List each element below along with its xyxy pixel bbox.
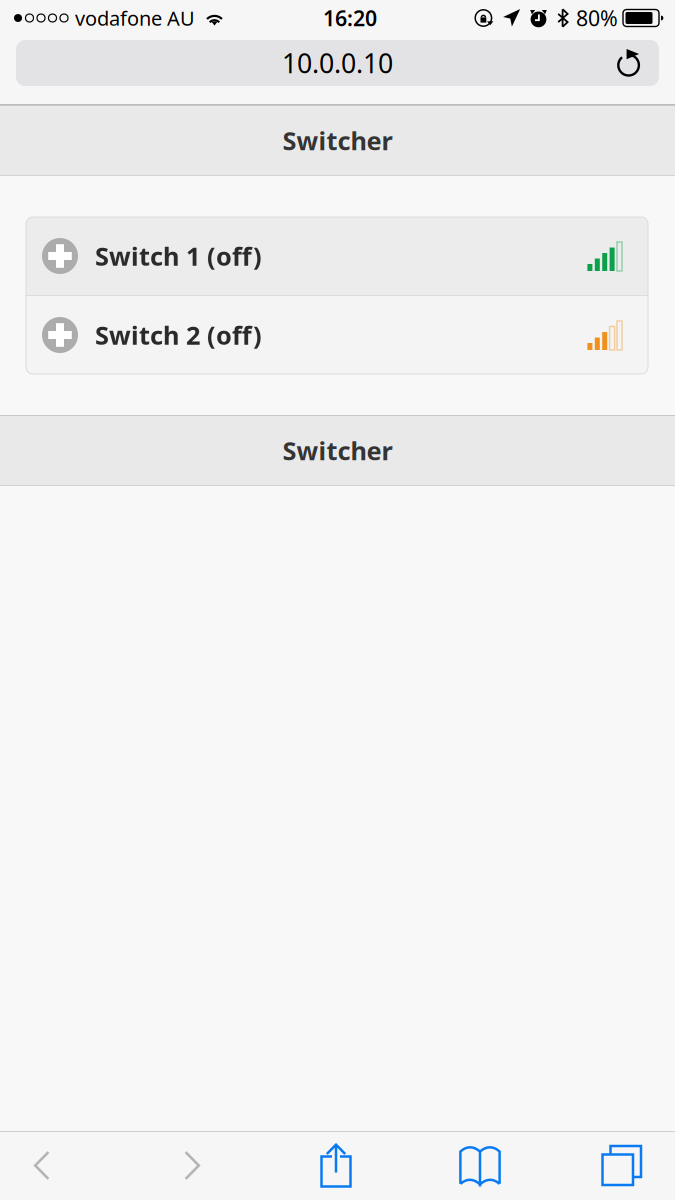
staticText: 16:20 xyxy=(323,4,377,32)
button[interactable]: Switch 1 (off) xyxy=(26,217,648,295)
staticText: vodafone AU xyxy=(75,5,195,31)
staticText: 80% xyxy=(576,4,618,32)
staticText: 10.0.0.10 xyxy=(282,45,393,81)
button[interactable]: Bookmarks xyxy=(438,1131,522,1200)
button[interactable]: Share xyxy=(294,1131,378,1200)
staticText: Switch 2 (off) xyxy=(95,318,262,352)
button[interactable]: Forward xyxy=(150,1131,234,1200)
staticText: Switch 1 (off) xyxy=(95,239,262,273)
button[interactable]: Back xyxy=(0,1131,84,1200)
button[interactable]: 10.0.0.10 xyxy=(16,40,659,86)
staticText: Switcher xyxy=(282,434,392,467)
staticText: Switcher xyxy=(282,124,392,157)
button[interactable]: Switch 2 (off) xyxy=(26,296,648,374)
button[interactable]: Reload xyxy=(607,40,652,86)
button[interactable]: Tabs xyxy=(580,1131,664,1200)
